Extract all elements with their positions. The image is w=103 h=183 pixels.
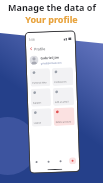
staticText: Your profile [25,13,78,25]
button[interactable]: Add an email [52,87,74,106]
button[interactable]: Preferences [52,67,73,86]
button[interactable]: Profile [69,157,76,164]
staticText: Manage the data of [8,1,96,13]
staticText: gmail@email.com [41,61,62,64]
button[interactable]: Search [45,158,52,165]
button[interactable]: Home [33,158,40,166]
button[interactable]: Gabriel Jim [29,54,73,65]
staticText: Gabriel Jim [40,55,60,60]
staticText: Delete account [56,120,72,124]
other: Back [29,47,33,51]
staticText: Profile [34,46,46,52]
staticText: Personal data [32,81,47,85]
button[interactable]: Support [30,88,51,107]
button[interactable]: Personal data [30,68,50,87]
button[interactable]: Delete account [53,107,75,126]
staticText: 3:08 [29,38,35,42]
button[interactable]: Back [29,44,72,52]
staticText: Logout [34,121,42,125]
staticText: Add an email [55,100,69,104]
staticText: Support [33,101,42,105]
staticText: Preferences [54,80,67,84]
button[interactable]: Cart [57,158,64,165]
button[interactable]: Logout [31,108,52,127]
